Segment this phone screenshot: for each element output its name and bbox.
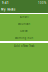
staticText: Sunset	[19, 15, 28, 19]
staticText: 100%	[38, 1, 46, 5]
staticText: Add a New Track	[14, 44, 34, 48]
staticText: My Tracks	[1, 8, 15, 11]
staticText: Mountain	[17, 22, 30, 26]
staticText: 9:41	[2, 1, 9, 5]
staticText: Morning Run	[14, 36, 33, 40]
staticText: Ocean	[20, 29, 28, 33]
